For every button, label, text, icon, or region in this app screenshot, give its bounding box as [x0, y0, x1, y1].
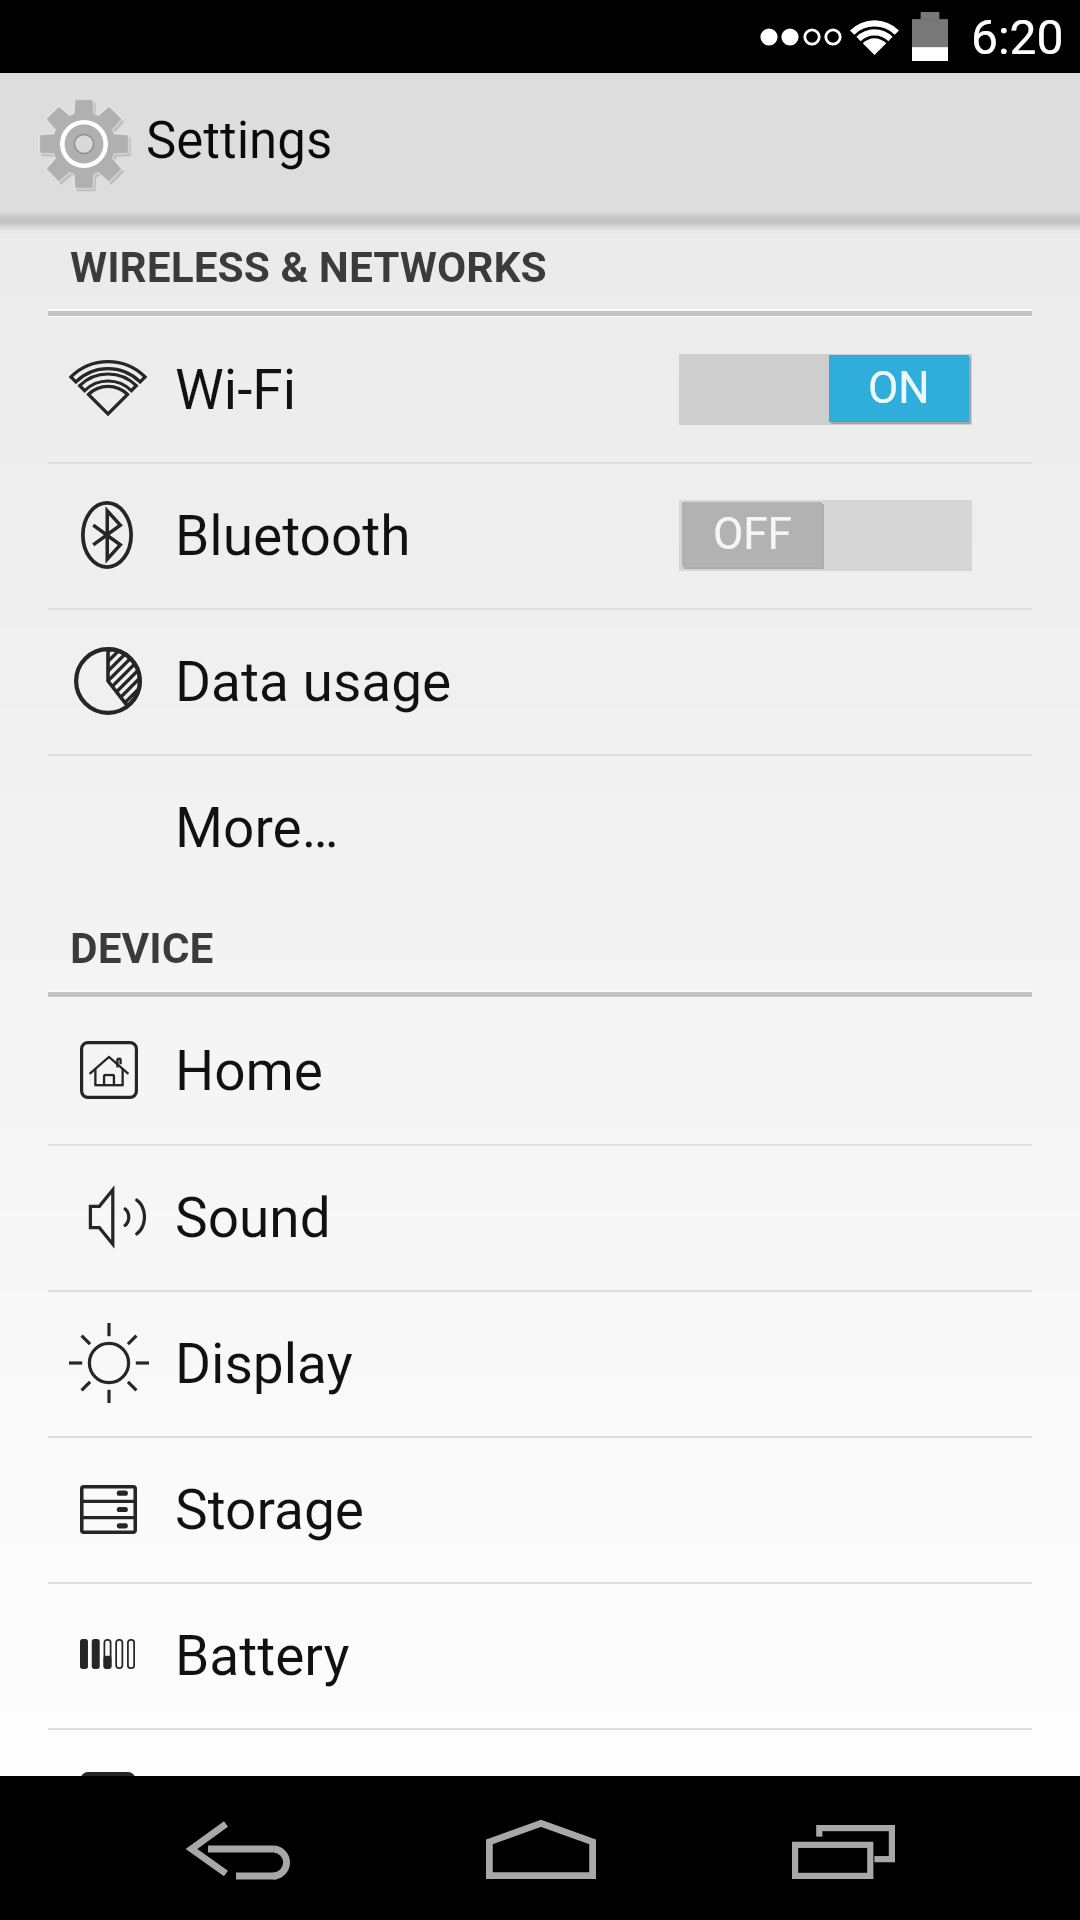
- button[interactable]: OFF: [679, 500, 972, 571]
- staticText: 6:20: [971, 9, 1064, 65]
- staticText: More…: [175, 796, 339, 860]
- staticText: Display: [175, 1332, 353, 1396]
- button[interactable]: Data usage: [0, 608, 1080, 754]
- button[interactable]: Storage: [0, 1436, 1080, 1582]
- staticText: Home: [175, 1039, 324, 1103]
- button[interactable]: Wi-Fi: [0, 316, 1080, 462]
- button[interactable]: Settings: [0, 73, 1080, 212]
- staticText: DEVICE: [70, 924, 214, 974]
- button[interactable]: Home: [360, 1776, 720, 1920]
- staticText: Sound: [175, 1186, 331, 1250]
- button[interactable]: Bluetooth: [0, 462, 1080, 608]
- staticText: Battery: [175, 1624, 350, 1688]
- button[interactable]: Battery: [0, 1582, 1080, 1728]
- staticText: Wi-Fi: [175, 358, 297, 422]
- button[interactable]: Sound: [0, 1144, 1080, 1290]
- staticText: Settings: [146, 111, 333, 171]
- staticText: OFF: [713, 508, 792, 560]
- button[interactable]: Recent apps: [720, 1776, 1080, 1920]
- button[interactable]: Display: [0, 1290, 1080, 1436]
- staticText: Bluetooth: [175, 504, 411, 568]
- button[interactable]: More…: [0, 754, 1080, 900]
- staticText: Apps: [175, 1770, 302, 1834]
- button[interactable]: ON: [679, 354, 972, 425]
- button[interactable]: Apps: [0, 1728, 1080, 1874]
- button[interactable]: Back: [0, 1776, 360, 1920]
- staticText: Data usage: [175, 650, 452, 714]
- button[interactable]: Home: [0, 997, 1080, 1143]
- staticText: ON: [868, 362, 930, 414]
- staticText: Storage: [175, 1478, 365, 1542]
- staticText: WIRELESS & NETWORKS: [70, 243, 547, 293]
